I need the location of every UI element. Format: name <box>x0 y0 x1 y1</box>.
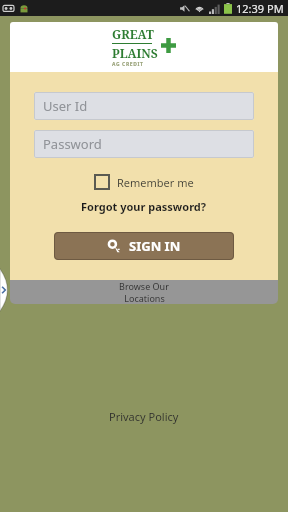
staticText: Remember me <box>117 175 194 190</box>
staticText: SIGN IN <box>129 237 181 255</box>
button[interactable]: Open side menu <box>0 269 11 311</box>
button[interactable]: Forgot your password? <box>79 198 209 215</box>
staticText: User Id <box>43 97 88 115</box>
staticText: Browse Our <box>119 280 169 292</box>
staticText: PLAINS <box>112 45 158 61</box>
button[interactable]: Password <box>34 130 254 158</box>
button[interactable]: Remember me <box>92 172 196 192</box>
staticText: Forgot your password? <box>81 199 207 214</box>
button[interactable]: Privacy Policy <box>103 406 185 427</box>
staticText: AG CREDIT <box>112 61 144 68</box>
staticText: 12:39 PM <box>236 1 284 16</box>
staticText: Locations <box>124 292 165 304</box>
staticText: Password <box>43 135 102 153</box>
staticText: Privacy Policy <box>109 409 179 424</box>
button[interactable]: User Id <box>34 92 254 120</box>
staticText: GREAT <box>112 26 154 42</box>
button[interactable]: SIGN IN <box>54 232 234 260</box>
button[interactable]: Browse Our <box>10 280 278 304</box>
